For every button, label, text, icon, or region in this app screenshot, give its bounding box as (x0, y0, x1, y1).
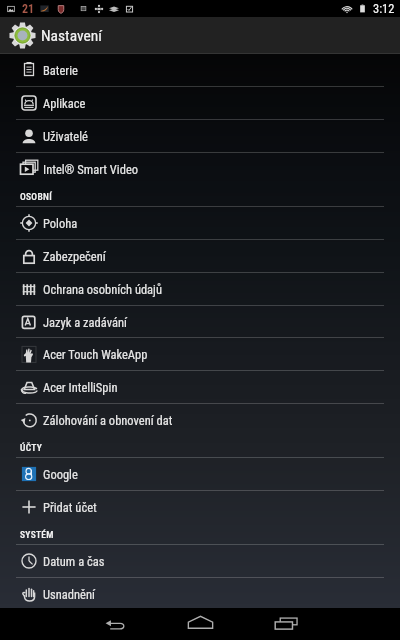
staticText: Jazyk a zadávání (43, 315, 127, 330)
button[interactable]: Datum a čas (0, 545, 400, 577)
button[interactable]: Jazyk a zadávání (0, 306, 400, 338)
staticText: Nastavení (41, 27, 102, 45)
button[interactable]: Uživatelé (0, 120, 400, 152)
staticText: 21 (22, 2, 35, 16)
button[interactable]: Baterie (0, 54, 400, 86)
staticText: Ochrana osobních údajů (43, 282, 162, 297)
staticText: Baterie (43, 63, 78, 78)
button[interactable]: Nastavení (0, 17, 400, 54)
button[interactable]: Home (172, 611, 228, 640)
button[interactable]: Google (0, 458, 400, 490)
staticText: Zabezpečení (43, 249, 106, 264)
button[interactable]: Intel® Smart Video (0, 153, 400, 185)
staticText: Zálohování a obnovení dat (43, 413, 173, 428)
staticText: Poloha (43, 216, 78, 231)
staticText: Google (43, 467, 78, 482)
button[interactable]: Recent apps (258, 611, 314, 640)
staticText: Acer Touch WakeApp (43, 347, 148, 362)
staticText: Acer IntelliSpin (43, 380, 118, 395)
staticText: Usnadnění (43, 587, 95, 602)
button[interactable]: Back (87, 611, 143, 640)
button[interactable]: Acer Touch WakeApp (0, 338, 400, 370)
staticText: Aplikace (43, 96, 86, 111)
staticText: 3:12 (373, 1, 395, 16)
staticText: OSOBNÍ (20, 191, 52, 202)
button[interactable]: Přidat účet (0, 491, 400, 523)
button[interactable]: Poloha (0, 207, 400, 239)
button[interactable]: Aplikace (0, 87, 400, 119)
staticText: Přidat účet (43, 500, 97, 515)
button[interactable]: Usnadnění (0, 578, 400, 610)
staticText: Datum a čas (43, 554, 105, 569)
staticText: SYSTÉM (20, 529, 54, 540)
staticText: ÚČTY (20, 442, 43, 453)
staticText: Intel® Smart Video (43, 162, 139, 177)
button[interactable]: Zálohování a obnovení dat (0, 404, 400, 436)
button[interactable]: Ochrana osobních údajů (0, 273, 400, 305)
staticText: Uživatelé (43, 129, 88, 144)
button[interactable]: Zabezpečení (0, 240, 400, 272)
button[interactable]: Acer IntelliSpin (0, 371, 400, 403)
